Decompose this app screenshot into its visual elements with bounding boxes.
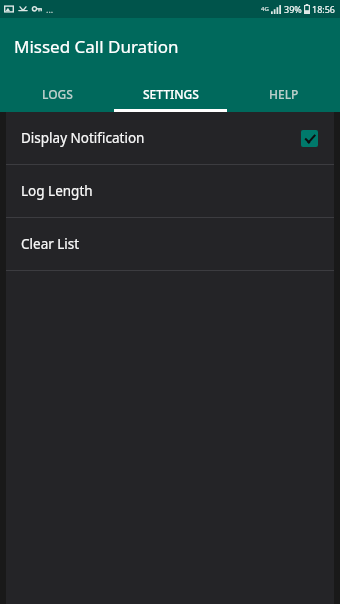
staticText: Missed Call Duration	[14, 35, 179, 58]
button[interactable]: Clear List	[6, 218, 334, 270]
staticText: 4G	[261, 5, 269, 13]
staticText: Clear List	[21, 235, 318, 253]
staticText: SETTINGS	[143, 86, 199, 102]
button[interactable]: LOGS	[0, 75, 114, 112]
staticText: Log Length	[21, 182, 318, 200]
button[interactable]: Log Length	[6, 165, 334, 217]
staticText: ...	[46, 3, 54, 15]
staticText: HELP	[269, 86, 299, 102]
other: Display Notification checkbox, checked	[301, 130, 318, 147]
staticText: Display Notification	[21, 129, 301, 147]
staticText: LOGS	[42, 86, 73, 102]
button[interactable]: Display Notification	[6, 112, 334, 164]
staticText: 39%	[284, 3, 302, 15]
staticText: 18:56	[312, 3, 336, 15]
button[interactable]: HELP	[227, 75, 340, 112]
button[interactable]: SETTINGS	[114, 75, 227, 112]
